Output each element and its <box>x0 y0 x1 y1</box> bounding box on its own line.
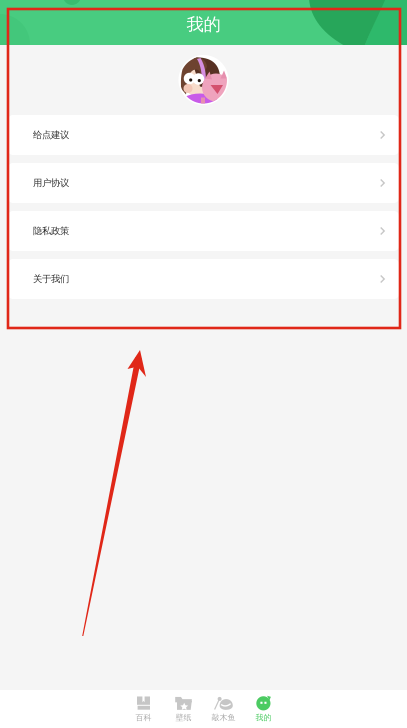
button[interactable]: 壁纸 <box>163 693 203 725</box>
staticText: 关于我们 <box>33 273 69 285</box>
staticText: 我的 <box>255 713 271 722</box>
button[interactable]: 百科 <box>123 693 163 725</box>
button[interactable]: 我的 <box>243 693 283 725</box>
staticText: 敲木鱼 <box>211 713 235 722</box>
button[interactable]: 隐私政策 <box>8 211 399 251</box>
button[interactable]: 给点建议 <box>8 115 399 155</box>
staticText: 我的 <box>186 14 220 35</box>
staticText: 隐私政策 <box>33 225 69 237</box>
button[interactable]: 敲木鱼 <box>203 693 243 725</box>
staticText: 壁纸 <box>175 713 191 722</box>
staticText: 用户协议 <box>33 177 69 189</box>
staticText: 百科 <box>135 713 151 722</box>
staticText: 给点建议 <box>33 129 69 141</box>
button[interactable]: 关于我们 <box>8 259 399 299</box>
button[interactable]: 用户协议 <box>8 163 399 203</box>
